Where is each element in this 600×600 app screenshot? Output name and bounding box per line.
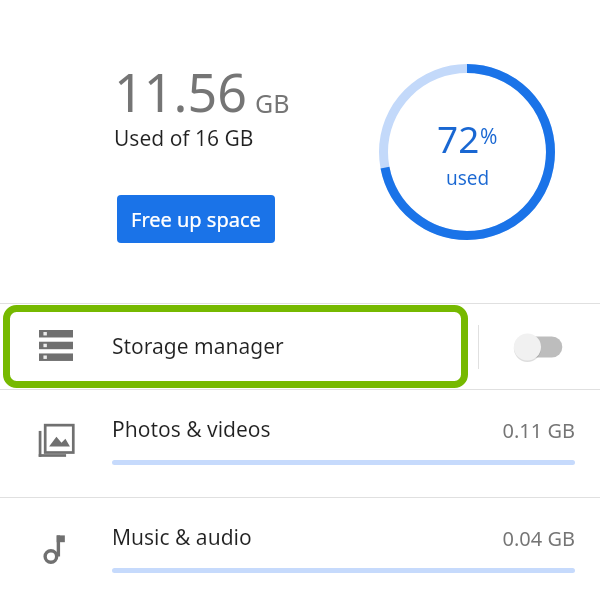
staticText: 11.56 — [114, 56, 247, 127]
button[interactable]: Free up space — [117, 195, 275, 243]
button[interactable]: Storage manager toggle, off — [479, 304, 600, 389]
staticText: % — [480, 122, 498, 151]
staticText: Free up space — [131, 206, 261, 233]
button[interactable]: Photos & videos — [0, 390, 600, 497]
button[interactable]: Storage manager — [0, 304, 478, 389]
staticText: 0.11 GB — [502, 417, 575, 444]
staticText: Storage manager — [112, 332, 284, 361]
staticText: GB — [255, 86, 290, 120]
staticText: 72 — [437, 113, 480, 163]
staticText: 0.04 GB — [502, 525, 575, 552]
staticText: Music & audio — [112, 523, 252, 552]
button[interactable]: Music & audio — [0, 498, 600, 600]
staticText: Used of 16 GB — [114, 124, 254, 153]
staticText: Photos & videos — [112, 415, 271, 444]
staticText: used — [446, 165, 490, 191]
